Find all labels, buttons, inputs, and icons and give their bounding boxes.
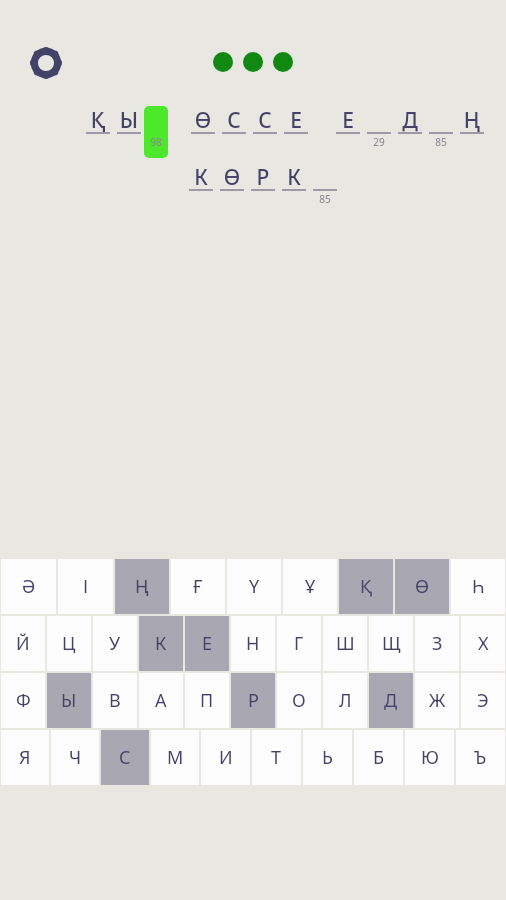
button[interactable]: М (151, 730, 199, 785)
button[interactable]: Ч (51, 730, 99, 785)
staticText: Ғ (193, 574, 203, 599)
button[interactable]: Қ (85, 106, 111, 158)
button[interactable]: И (201, 730, 250, 785)
staticText: Д (397, 106, 423, 135)
staticText: Һ (472, 574, 485, 599)
button[interactable]: Ң (459, 106, 485, 158)
button[interactable]: 29 (366, 106, 392, 158)
staticText: К (188, 163, 214, 192)
button[interactable]: Ы (116, 106, 142, 158)
staticText: Т (271, 745, 282, 770)
button[interactable]: Ү (227, 559, 281, 614)
button[interactable]: Х (461, 616, 505, 671)
button[interactable]: Ғ (171, 559, 225, 614)
button[interactable]: 98 (144, 106, 168, 158)
button[interactable]: Ө (190, 106, 216, 158)
staticText: Ъ (474, 745, 487, 770)
button[interactable]: Ж (415, 673, 459, 728)
button[interactable]: Е (283, 106, 309, 158)
button[interactable]: А (139, 673, 183, 728)
button[interactable]: Е (185, 616, 229, 671)
staticText: А (155, 688, 167, 713)
staticText: Д (384, 688, 398, 713)
staticText: І (83, 574, 89, 599)
button[interactable]: Я (1, 730, 49, 785)
button[interactable]: Ң (115, 559, 169, 614)
staticText: 29 (366, 135, 392, 149)
staticText: Щ (382, 631, 401, 656)
staticText: К (281, 163, 307, 192)
button[interactable]: Settings (26, 43, 66, 83)
button[interactable]: С (252, 106, 278, 158)
staticText: М (167, 745, 184, 770)
staticText: Ұ (305, 574, 316, 599)
button[interactable]: З (415, 616, 459, 671)
staticText: Я (19, 745, 31, 770)
button[interactable]: Ю (405, 730, 454, 785)
staticText: К (155, 631, 167, 656)
button[interactable]: Ц (47, 616, 91, 671)
staticText: Ң (135, 574, 149, 599)
button[interactable]: Ы (47, 673, 91, 728)
staticText: Қ (85, 106, 111, 135)
button[interactable]: Э (461, 673, 505, 728)
button[interactable]: Н (231, 616, 275, 671)
button[interactable]: Ә (1, 559, 56, 614)
staticText: Ы (116, 106, 142, 135)
staticText: 85 (428, 135, 454, 149)
button[interactable]: Һ (451, 559, 505, 614)
button[interactable]: Г (277, 616, 321, 671)
button[interactable]: Д (397, 106, 423, 158)
button[interactable]: Қ (339, 559, 393, 614)
button[interactable]: К (281, 163, 307, 215)
button[interactable]: Ө (219, 163, 245, 215)
staticText: С (119, 745, 131, 770)
staticText: В (109, 688, 121, 713)
staticText: Н (246, 631, 260, 656)
button[interactable]: Д (369, 673, 413, 728)
staticText: С (221, 106, 247, 135)
button[interactable]: Ь (303, 730, 352, 785)
button[interactable]: Р (231, 673, 275, 728)
staticText: Й (16, 631, 30, 656)
staticText: И (219, 745, 233, 770)
button[interactable]: Е (335, 106, 361, 158)
button[interactable]: Р (250, 163, 276, 215)
button[interactable]: С (101, 730, 149, 785)
staticText: Ө (219, 163, 245, 192)
staticText: Е (335, 106, 361, 135)
button[interactable]: П (185, 673, 229, 728)
button[interactable]: Ъ (456, 730, 505, 785)
button[interactable]: Л (323, 673, 367, 728)
staticText: П (200, 688, 214, 713)
button[interactable]: В (93, 673, 137, 728)
staticText: Ч (69, 745, 82, 770)
button[interactable]: Ө (395, 559, 449, 614)
staticText: Ю (421, 745, 439, 770)
staticText: Е (283, 106, 309, 135)
staticText: 98 (144, 135, 168, 149)
button[interactable]: Hints (211, 50, 295, 74)
button[interactable]: 85 (312, 163, 338, 215)
button[interactable]: Щ (369, 616, 413, 671)
button[interactable]: Б (354, 730, 403, 785)
button[interactable]: Ш (323, 616, 367, 671)
button[interactable]: 85 (428, 106, 454, 158)
staticText: Ф (16, 688, 31, 713)
button[interactable]: К (139, 616, 183, 671)
button[interactable]: Т (252, 730, 301, 785)
staticText: Ө (415, 574, 430, 599)
staticText: Ш (336, 631, 355, 656)
button[interactable]: К (188, 163, 214, 215)
button[interactable]: У (93, 616, 137, 671)
staticText: Ж (429, 688, 446, 713)
staticText: З (432, 631, 443, 656)
button[interactable]: Ұ (283, 559, 337, 614)
staticText: Ь (322, 745, 333, 770)
staticText: Б (373, 745, 385, 770)
button[interactable]: Ф (1, 673, 45, 728)
button[interactable]: Й (1, 616, 45, 671)
button[interactable]: І (58, 559, 113, 614)
button[interactable]: С (221, 106, 247, 158)
button[interactable]: О (277, 673, 321, 728)
